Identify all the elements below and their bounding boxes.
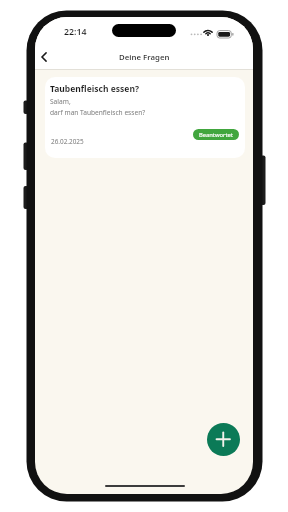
- staticText: Beantwortet: [199, 131, 233, 139]
- button[interactable]: [37, 50, 51, 64]
- staticText: Deine Fragen: [119, 52, 170, 63]
- staticText: 22:14: [64, 26, 87, 38]
- staticText: darf man Taubenfleisch essen?: [50, 108, 146, 117]
- staticText: Taubenfleisch essen?: [50, 83, 139, 95]
- staticText: 26.02.2025: [51, 137, 84, 146]
- button[interactable]: [207, 423, 240, 456]
- staticText: Salam,: [50, 97, 71, 106]
- button[interactable]: Taubenfleisch essen?: [45, 77, 245, 158]
